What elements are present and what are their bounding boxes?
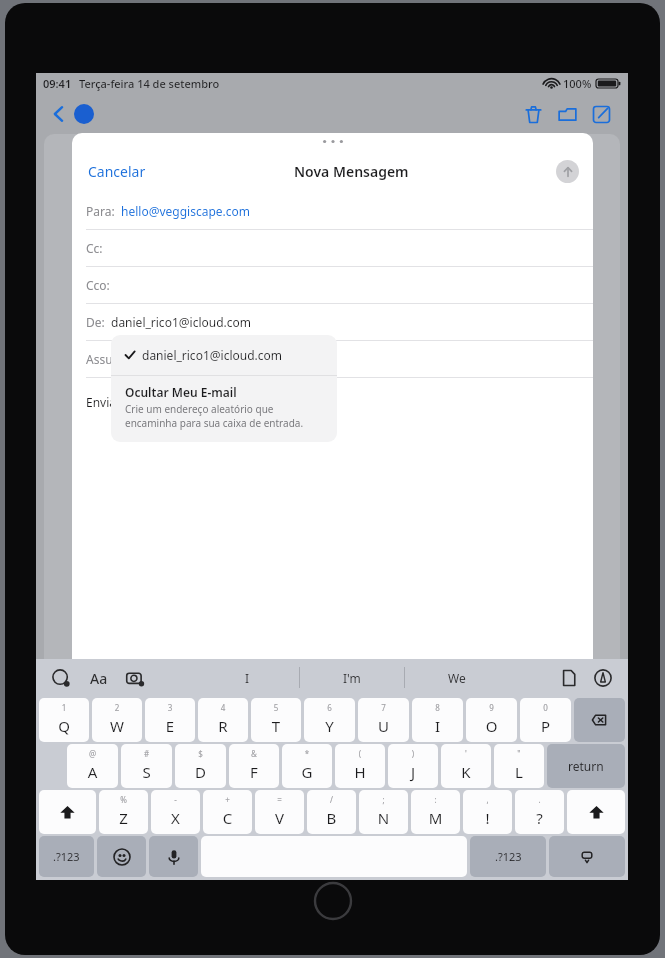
button[interactable]: Ditado: [149, 836, 198, 877]
button[interactable]: Cancelar: [86, 156, 148, 187]
button[interactable]: Marcação: [590, 665, 616, 691]
staticText: J: [388, 762, 438, 782]
staticText: 2: [92, 702, 142, 713]
button[interactable]: +: [203, 790, 252, 834]
button[interactable]: ): [388, 744, 438, 788]
staticText: .?123: [495, 849, 522, 864]
button[interactable]: .?123: [39, 836, 94, 877]
button[interactable]: 1: [39, 698, 89, 742]
staticText: Cancelar: [88, 162, 146, 181]
staticText: Assunto:: [86, 351, 135, 367]
button[interactable]: Home: [312, 880, 354, 922]
button[interactable]: Enviar: [556, 160, 579, 183]
button[interactable]: ": [494, 744, 544, 788]
button[interactable]: 4: [198, 698, 248, 742]
button[interactable]: 0: [520, 698, 571, 742]
button[interactable]: daniel_rico1@icloud.com: [111, 335, 337, 375]
button[interactable]: Shift: [567, 790, 625, 834]
staticText: V: [255, 808, 304, 828]
staticText: hello@veggiscape.com: [121, 203, 250, 219]
button[interactable]: 6: [304, 698, 355, 742]
button[interactable]: *: [282, 744, 332, 788]
button[interactable]: 7: [358, 698, 409, 742]
button[interactable]: :: [411, 790, 460, 834]
staticText: H: [335, 762, 385, 782]
staticText: M: [411, 808, 460, 828]
staticText: $: [175, 748, 226, 759]
button[interactable]: $: [175, 744, 226, 788]
staticText: I: [245, 670, 250, 686]
button[interactable]: I: [195, 663, 299, 693]
button[interactable]: De:: [72, 304, 593, 340]
staticText: B: [307, 808, 356, 828]
staticText: =: [255, 794, 304, 805]
staticText: .?123: [53, 849, 80, 864]
button[interactable]: 5: [251, 698, 301, 742]
staticText: Crie um endereço aleatório que encaminha…: [125, 402, 304, 430]
button[interactable]: -: [151, 790, 200, 834]
staticText: 5: [251, 702, 301, 713]
button[interactable]: (: [335, 744, 385, 788]
button[interactable]: Shift: [39, 790, 96, 834]
staticText: 100%: [563, 76, 592, 91]
staticText: (: [335, 748, 385, 759]
staticText: Aa: [90, 669, 108, 688]
button[interactable]: &: [229, 744, 279, 788]
staticText: %: [99, 794, 148, 805]
button[interactable]: Documento: [556, 665, 582, 691]
button[interactable]: %: [99, 790, 148, 834]
button[interactable]: Para:: [72, 193, 593, 229]
button[interactable]: Câmera: [122, 665, 148, 691]
button[interactable]: @: [67, 744, 118, 788]
button[interactable]: Ocultar Meu E-mail: [111, 376, 337, 430]
button[interactable]: Apagar: [516, 97, 550, 131]
staticText: Cc:: [86, 240, 103, 256]
button[interactable]: Mover: [550, 97, 584, 131]
button[interactable]: Formatar texto: [48, 665, 74, 691]
button[interactable]: We: [405, 663, 509, 693]
button[interactable]: #: [121, 744, 172, 788]
button[interactable]: Voltar: [46, 101, 72, 127]
button[interactable]: Nova mensagem: [584, 97, 618, 131]
staticText: 09:41: [43, 76, 72, 91]
button[interactable]: Cco:: [72, 267, 593, 303]
button[interactable]: =: [255, 790, 304, 834]
button[interactable]: /: [307, 790, 356, 834]
button[interactable]: .: [515, 790, 564, 834]
staticText: Ocultar Meu E-mail: [125, 384, 237, 400]
staticText: /: [307, 794, 356, 805]
button[interactable]: Apagar: [574, 698, 625, 742]
staticText: W: [92, 716, 142, 736]
button[interactable]: 3: [145, 698, 195, 742]
button[interactable]: ,: [463, 790, 512, 834]
staticText: *: [282, 748, 332, 759]
staticText: A: [67, 762, 118, 782]
button[interactable]: Assunto:: [72, 341, 593, 377]
button[interactable]: Emoji: [97, 836, 146, 877]
button[interactable]: ;: [359, 790, 408, 834]
staticText: 3: [145, 702, 195, 713]
button[interactable]: ': [441, 744, 491, 788]
staticText: X: [151, 808, 200, 828]
staticText: 1: [39, 702, 89, 713]
staticText: I: [412, 716, 463, 736]
button[interactable]: .?123: [470, 836, 546, 877]
button[interactable]: Aa: [86, 665, 112, 691]
staticText: ;: [359, 794, 408, 805]
staticText: 4: [198, 702, 248, 713]
staticText: Z: [99, 808, 148, 828]
button[interactable]: 9: [466, 698, 517, 742]
staticText: F: [229, 762, 279, 782]
button[interactable]: return: [547, 744, 625, 788]
staticText: Para:: [86, 203, 115, 219]
staticText: ': [441, 748, 491, 759]
staticText: 0: [520, 702, 571, 713]
button[interactable]: Cc:: [72, 230, 593, 266]
button[interactable]: 2: [92, 698, 142, 742]
staticText: S: [121, 762, 172, 782]
button[interactable]: Ocultar teclado: [549, 836, 625, 877]
button[interactable]: I'm: [300, 663, 404, 693]
staticText: G: [282, 762, 332, 782]
button[interactable]: 8: [412, 698, 463, 742]
